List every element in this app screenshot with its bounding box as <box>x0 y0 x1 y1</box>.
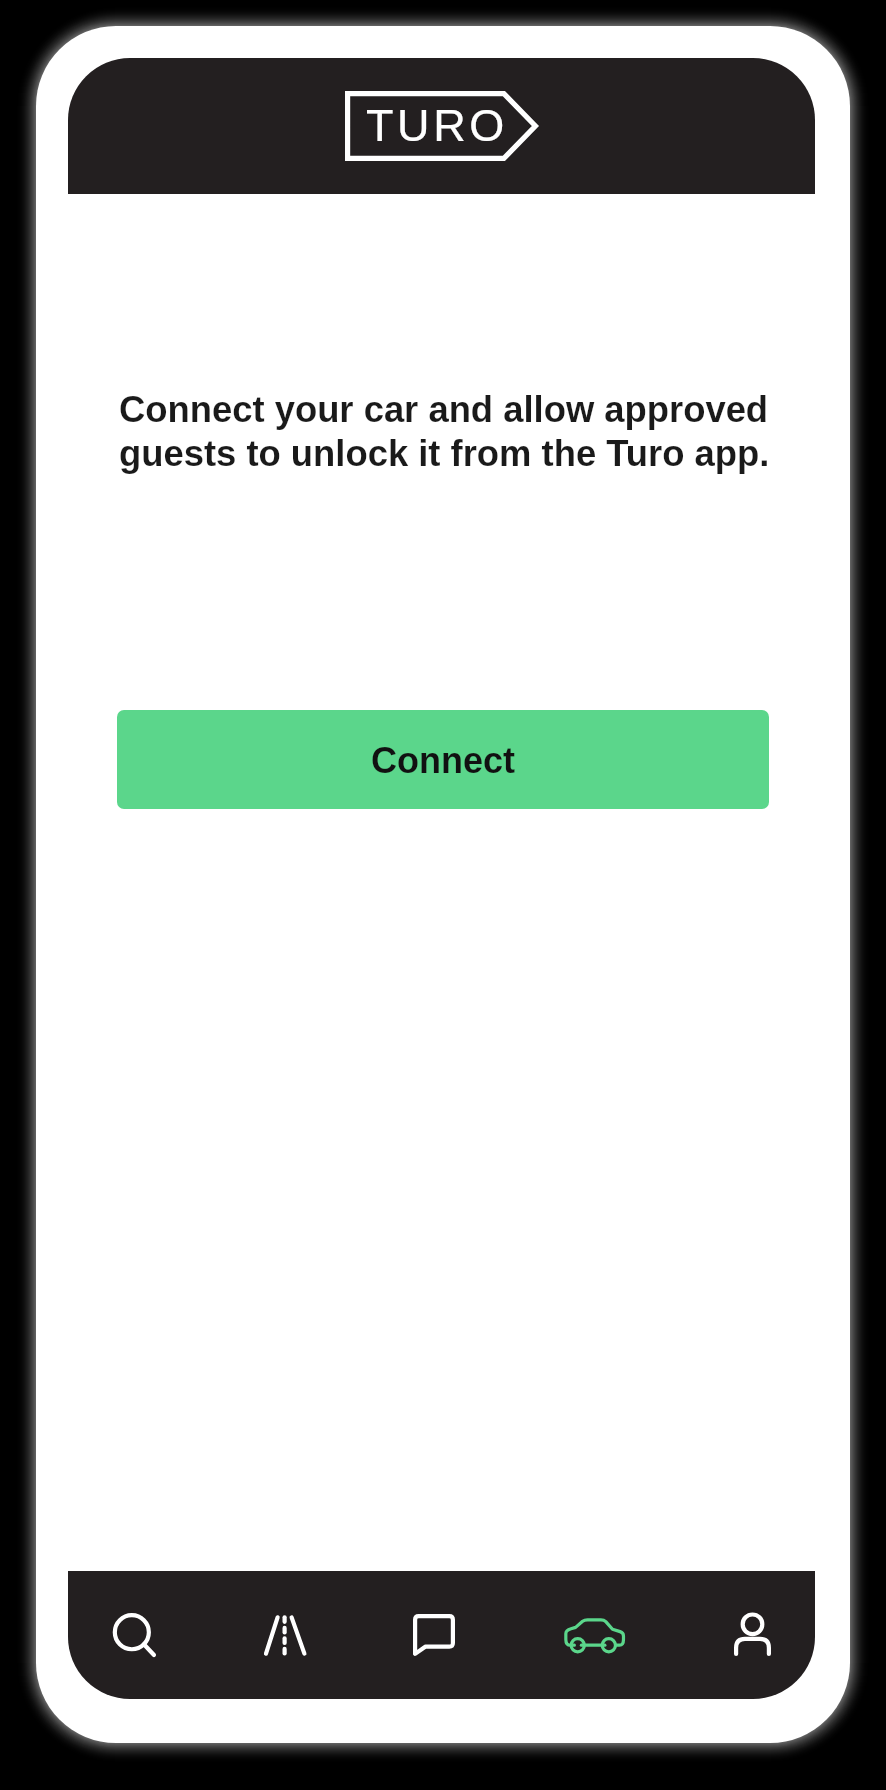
staticText: Connect your car and allow approved gues… <box>119 389 770 474</box>
button[interactable]: Profile <box>721 1571 783 1699</box>
button[interactable]: Connect <box>117 710 769 809</box>
button[interactable]: Search <box>103 1571 165 1699</box>
staticText: TURO <box>366 100 508 150</box>
button[interactable]: Trips <box>258 1571 320 1699</box>
button[interactable]: Inbox <box>412 1571 474 1699</box>
staticText: Connect <box>371 740 515 780</box>
button[interactable]: Vehicles <box>567 1571 629 1699</box>
